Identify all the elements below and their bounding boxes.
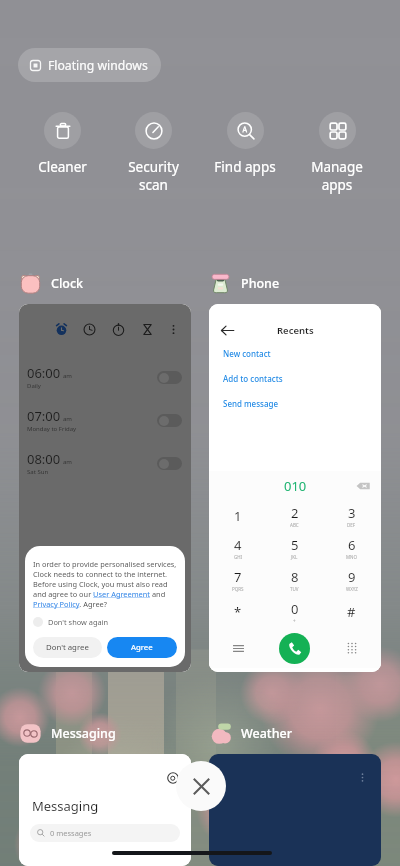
button[interactable]: More options — [357, 772, 368, 783]
button[interactable]: Floating windows — [18, 48, 161, 82]
staticText: 08:00 — [27, 450, 61, 468]
button[interactable]: Backspace — [356, 479, 370, 493]
button[interactable]: 5 — [266, 532, 323, 564]
button[interactable]: Don't show again — [33, 617, 109, 627]
button[interactable]: Keypad — [323, 628, 380, 668]
staticText: Floating windows — [48, 57, 148, 74]
button[interactable]: Search contacts — [167, 772, 179, 784]
button[interactable]: World clock — [83, 323, 96, 336]
button[interactable]: Call — [279, 633, 310, 664]
button[interactable]: Search contacts — [19, 754, 191, 866]
button[interactable]: Stopwatch — [112, 323, 125, 336]
button[interactable]: 0 — [266, 596, 323, 628]
staticText: 06:00 — [27, 364, 61, 382]
staticText: Recents — [277, 324, 314, 337]
staticText: 2 — [291, 504, 299, 522]
button[interactable]: 9 — [323, 564, 380, 596]
staticText: Messaging — [32, 797, 99, 815]
staticText: JKL — [291, 554, 298, 560]
staticText: MNO — [346, 554, 358, 560]
staticText: + — [293, 618, 296, 624]
staticText: am — [63, 372, 72, 380]
button[interactable] — [157, 414, 182, 427]
button[interactable]: 7 — [210, 564, 266, 596]
button[interactable]: New contact — [223, 348, 271, 359]
staticText: Security scan — [108, 158, 199, 194]
button[interactable]: 2 — [266, 500, 323, 532]
staticText: Daily — [27, 382, 41, 390]
staticText: Manage apps — [291, 158, 383, 194]
button[interactable]: Alarm — [55, 323, 68, 336]
button[interactable]: Agree — [107, 637, 177, 658]
button[interactable]: 0 messages — [30, 824, 180, 842]
staticText: Monday to Friday — [27, 425, 77, 433]
button[interactable]: Manage apps — [291, 112, 383, 194]
staticText: Weather — [241, 725, 292, 742]
staticText: WXYZ — [346, 586, 358, 592]
staticText: * — [234, 603, 242, 621]
staticText: 07:00 — [27, 407, 61, 425]
staticText: Messaging — [51, 725, 116, 742]
button[interactable]: Send message — [223, 398, 279, 409]
button[interactable]: More options — [209, 754, 381, 866]
button[interactable]: Add to contacts — [223, 373, 283, 384]
staticText: 6 — [348, 536, 356, 554]
staticText: 4 — [234, 536, 242, 554]
staticText: Don't agree — [46, 642, 89, 653]
staticText: 8 — [291, 568, 299, 586]
staticText: Clock — [51, 275, 84, 292]
button[interactable]: Timer — [141, 323, 154, 336]
button[interactable]: Weather — [209, 722, 292, 745]
staticText: Phone — [241, 275, 280, 292]
button[interactable]: Back — [220, 323, 235, 338]
button[interactable]: 1 — [210, 500, 266, 532]
button[interactable]: Clock — [19, 272, 84, 295]
button[interactable]: Alarm — [19, 304, 191, 672]
staticText: PQRS — [232, 586, 244, 592]
staticText: ABC — [290, 522, 299, 528]
button[interactable]: Don't agree — [33, 637, 102, 658]
staticText: DEF — [347, 522, 356, 528]
button[interactable]: 4 — [210, 532, 266, 564]
button[interactable]: Find apps — [199, 112, 291, 176]
staticText: In order to provide personalised service… — [33, 559, 177, 609]
button[interactable]: Close all — [176, 761, 226, 811]
staticText: GHI — [234, 554, 243, 560]
staticText: TUV — [290, 586, 299, 592]
staticText: 0 — [291, 600, 299, 618]
button[interactable]: Back — [209, 304, 381, 672]
staticText: 5 — [291, 536, 299, 554]
staticText: Agree — [131, 642, 153, 653]
staticText: 010 — [284, 477, 307, 495]
staticText: Sat Sun — [27, 468, 49, 476]
staticText: 7 — [234, 568, 242, 586]
button[interactable]: Call log — [210, 628, 266, 668]
staticText: 9 — [348, 568, 356, 586]
button[interactable]: 6 — [323, 532, 380, 564]
button[interactable]: Security scan — [108, 112, 199, 194]
staticText: 3 — [348, 504, 356, 522]
staticText: 0 messages — [50, 828, 92, 838]
button[interactable] — [157, 457, 182, 470]
staticText: 1 — [234, 507, 242, 525]
staticText: am — [63, 458, 72, 466]
button[interactable]: * — [210, 596, 266, 628]
staticText: Find apps — [199, 158, 291, 176]
staticText: am — [63, 415, 72, 423]
staticText: Cleaner — [17, 158, 108, 176]
staticText: Don't show again — [48, 617, 109, 627]
button[interactable] — [157, 371, 182, 384]
button[interactable]: More options — [167, 323, 180, 336]
button[interactable]: Messaging — [19, 722, 116, 745]
button[interactable]: 8 — [266, 564, 323, 596]
button[interactable]: 3 — [323, 500, 380, 532]
button[interactable]: # — [323, 596, 380, 628]
staticText: # — [347, 603, 356, 621]
button[interactable]: Cleaner — [17, 112, 108, 176]
button[interactable]: Phone — [209, 272, 280, 295]
